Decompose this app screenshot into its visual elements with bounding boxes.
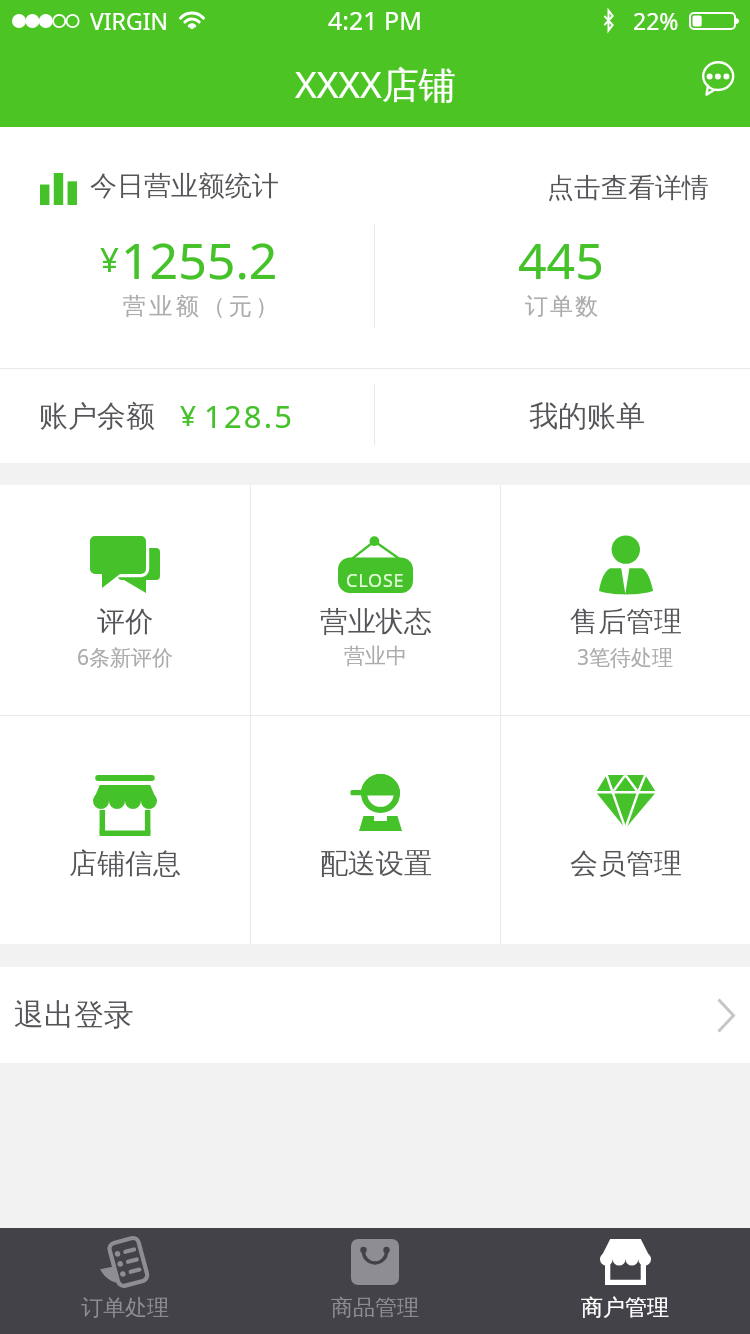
button[interactable]: 订单处理: [0, 1228, 250, 1334]
staticText: CLOSE: [346, 568, 405, 593]
staticText: 评价: [97, 604, 153, 639]
button[interactable]: 商户管理: [500, 1228, 750, 1334]
staticText: 今日营业额统计: [90, 169, 279, 203]
button[interactable]: 配送设置: [251, 716, 500, 944]
staticText: 营业额（元）: [121, 292, 280, 321]
button[interactable]: 我的账单: [375, 369, 750, 463]
staticText: 店铺信息: [69, 846, 181, 881]
staticText: 营业状态: [320, 604, 432, 639]
staticText: 3笔待处理: [577, 643, 674, 672]
staticText: 商品管理: [331, 1294, 419, 1322]
staticText: XXXX店铺: [295, 58, 456, 109]
staticText: 我的账单: [529, 398, 645, 435]
staticText: 商户管理: [581, 1294, 669, 1322]
button[interactable]: 店铺信息: [0, 716, 250, 944]
staticText: 订单数: [524, 292, 599, 321]
staticText: ¥: [180, 396, 197, 434]
staticText: 配送设置: [320, 846, 432, 881]
staticText: 订单处理: [81, 1294, 169, 1322]
staticText: 445: [518, 226, 604, 294]
staticText: 128.5: [204, 395, 295, 437]
staticText: 22%: [633, 5, 679, 36]
button[interactable]: Messages: [690, 40, 746, 112]
staticText: 1255.2: [121, 226, 278, 294]
button[interactable]: 会员管理: [501, 716, 750, 944]
staticText: 6条新评价: [77, 643, 174, 672]
staticText: 会员管理: [570, 846, 682, 881]
staticText: 账户余额: [39, 398, 155, 435]
staticText: 售后管理: [570, 604, 682, 639]
staticText: 营业中: [344, 643, 407, 669]
button[interactable]: 评价: [0, 485, 250, 715]
button[interactable]: 账户余额: [0, 369, 375, 463]
button[interactable]: 售后管理: [501, 485, 750, 715]
staticText: VIRGIN: [90, 5, 168, 36]
button[interactable]: 点击查看详情: [529, 151, 719, 221]
staticText: 退出登录: [14, 996, 134, 1034]
staticText: 点击查看详情: [547, 171, 709, 205]
button[interactable]: 退出登录: [0, 967, 750, 1063]
button[interactable]: 商品管理: [250, 1228, 500, 1334]
button[interactable]: CLOSE: [251, 485, 500, 715]
staticText: ¥: [100, 237, 119, 282]
staticText: 4:21 PM: [328, 3, 422, 37]
